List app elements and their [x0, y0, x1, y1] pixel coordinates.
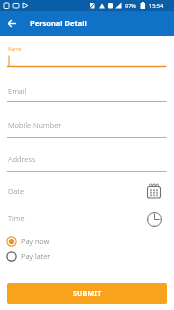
- staticText: Personal Detail: [30, 18, 87, 28]
- staticText: Time: [8, 213, 25, 223]
- staticText: Name: [8, 46, 22, 53]
- staticText: Mobile Number: [8, 120, 62, 130]
- staticText: 97%: [125, 2, 136, 9]
- staticText: Date: [8, 186, 25, 196]
- staticText: SUBMIT: [73, 289, 102, 299]
- staticText: Email: [8, 86, 27, 96]
- staticText: Pay later: [21, 251, 51, 261]
- staticText: Pay now: [21, 236, 50, 246]
- staticText: 15:54: [149, 2, 164, 9]
- staticText: Address: [8, 154, 36, 164]
